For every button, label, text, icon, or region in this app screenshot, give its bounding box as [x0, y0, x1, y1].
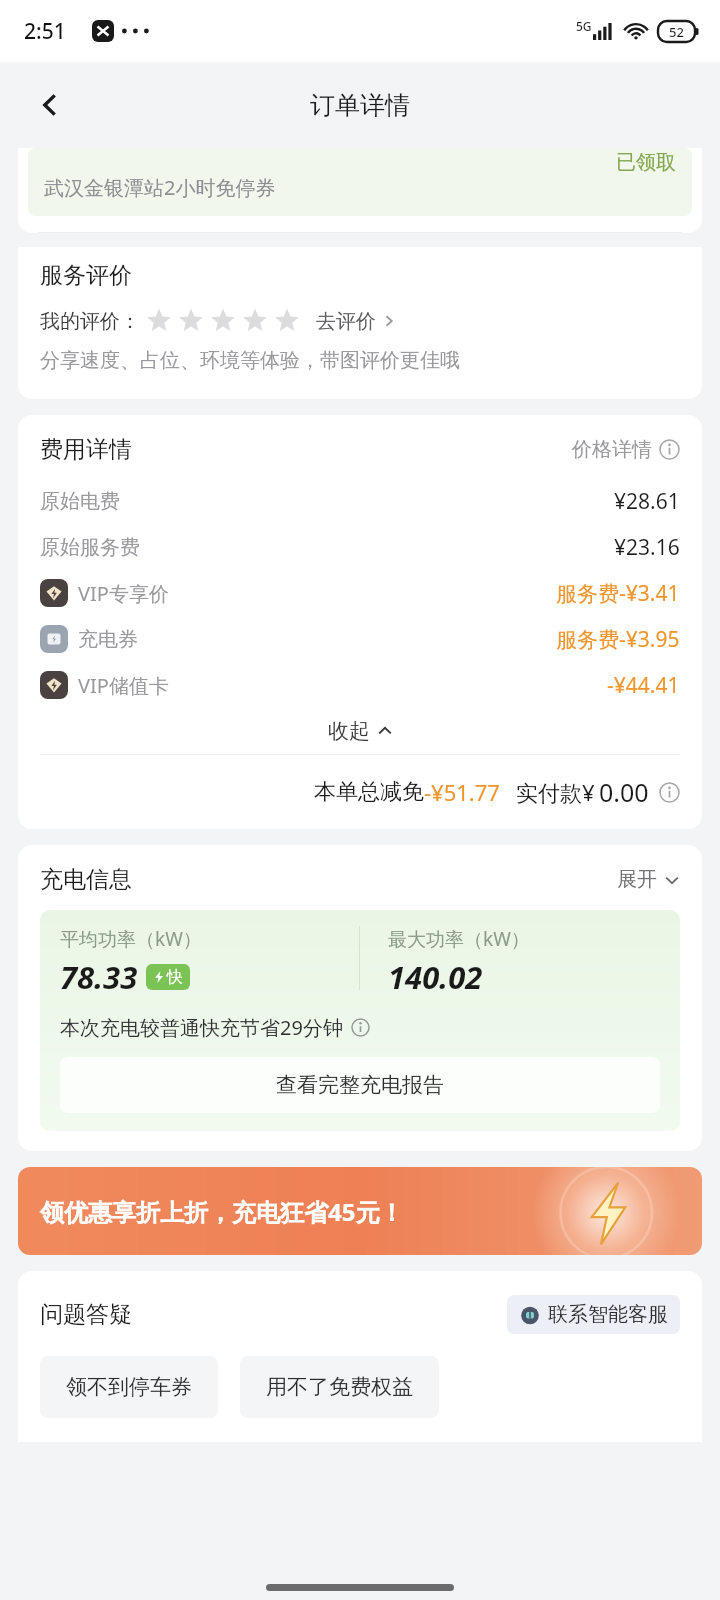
- staticText: ¥28.61: [614, 487, 680, 516]
- staticText: 去评价: [316, 309, 376, 334]
- staticText: 平均功率（kW）: [60, 926, 202, 952]
- button[interactable]: VIP专享价: [40, 570, 680, 616]
- button[interactable]: 价格详情: [572, 437, 680, 462]
- staticText: 140.02: [388, 956, 483, 998]
- button[interactable]: 收起: [40, 708, 680, 754]
- staticText: 武汉金银潭站2小时免停券: [44, 174, 276, 201]
- staticText: 52: [669, 23, 684, 41]
- staticText: 收起: [328, 718, 370, 744]
- button[interactable]: 我的评价：: [40, 308, 396, 334]
- staticText: -¥44.41: [607, 671, 680, 700]
- staticText: 联系智能客服: [548, 1302, 668, 1327]
- button[interactable]: 领不到停车券: [40, 1356, 218, 1418]
- staticText: 5G: [576, 18, 592, 34]
- staticText: 费用详情: [40, 435, 132, 464]
- staticText: 已领取: [616, 150, 676, 175]
- staticText: 78.33: [60, 956, 138, 998]
- button[interactable]: 本次充电较普通快充节省29分钟: [60, 1014, 370, 1041]
- staticText: 服务费-¥3.95: [556, 625, 680, 654]
- staticText: 领不到停车券: [66, 1374, 192, 1400]
- staticText: ¥23.16: [614, 533, 680, 562]
- staticText: 我的评价：: [40, 309, 140, 334]
- button[interactable]: 用不了免费权益: [240, 1356, 439, 1418]
- staticText: 订单详情: [310, 90, 410, 121]
- staticText: 实付款¥: [516, 777, 595, 807]
- staticText: 原始服务费: [40, 535, 140, 560]
- other: Payment info: [659, 782, 680, 803]
- staticText: -¥51.77: [424, 777, 500, 807]
- staticText: 本次充电较普通快充节省29分钟: [60, 1014, 343, 1041]
- staticText: 本单总减免: [314, 778, 424, 806]
- staticText: 服务费-¥3.41: [556, 579, 680, 608]
- staticText: 查看完整充电报告: [276, 1072, 444, 1098]
- staticText: 问题答疑: [40, 1300, 132, 1329]
- button[interactable]: 联系智能客服: [507, 1295, 680, 1334]
- button[interactable]: 武汉金银潭站2小时免停券: [28, 148, 692, 216]
- staticText: 展开: [617, 867, 657, 892]
- staticText: VIP专享价: [78, 580, 169, 607]
- staticText: 充电信息: [40, 865, 132, 894]
- button[interactable]: Back: [20, 75, 80, 135]
- button[interactable]: 原始服务费: [40, 524, 680, 570]
- staticText: 领优惠享折上折，充电狂省45元！: [40, 1195, 404, 1228]
- staticText: 原始电费: [40, 489, 120, 514]
- staticText: 服务评价: [40, 261, 132, 290]
- staticText: 价格详情: [572, 437, 652, 462]
- staticText: 最大功率（kW）: [388, 926, 530, 952]
- staticText: 分享速度、占位、环境等体验，带图评价更佳哦: [40, 348, 460, 373]
- button[interactable]: 查看完整充电报告: [60, 1057, 660, 1113]
- button[interactable]: VIP储值卡: [40, 662, 680, 708]
- staticText: VIP储值卡: [78, 672, 169, 699]
- staticText: 充电券: [78, 627, 138, 652]
- button[interactable]: 原始电费: [40, 478, 680, 524]
- staticText: 用不了免费权益: [266, 1374, 413, 1400]
- staticText: 0.00: [599, 775, 649, 809]
- staticText: 2:51: [24, 17, 66, 46]
- button[interactable]: 领优惠享折上折，充电狂省45元！: [18, 1167, 702, 1255]
- button[interactable]: 展开: [617, 867, 680, 892]
- button[interactable]: 充电券: [40, 616, 680, 662]
- staticText: 快: [167, 967, 183, 987]
